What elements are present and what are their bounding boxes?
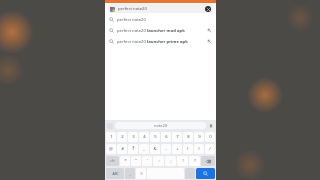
staticText: _ — [143, 146, 145, 152]
staticText: perfect note20 — [118, 6, 147, 12]
staticText: 3 — [132, 134, 135, 140]
button[interactable]: @ — [106, 144, 116, 154]
button[interactable]: , — [125, 168, 135, 179]
staticText: launcher prime apk — [147, 39, 188, 45]
staticText: : — [158, 158, 160, 164]
staticText: + — [176, 146, 179, 152]
button[interactable]: 5 — [150, 132, 160, 142]
button[interactable]: ⠿ — [136, 168, 146, 179]
staticText: & — [153, 146, 157, 152]
button[interactable]: 4 — [139, 132, 149, 142]
button[interactable]: Clear search — [205, 6, 211, 12]
button[interactable]: ; — [165, 156, 176, 166]
staticText: # — [121, 146, 124, 152]
button[interactable]: * — [120, 156, 130, 166]
staticText: - — [165, 146, 167, 152]
staticText: ; — [170, 158, 172, 164]
button[interactable]: Backspace — [201, 156, 215, 166]
staticText: 2 — [121, 134, 124, 140]
other: Insert suggestion — [207, 39, 212, 44]
button[interactable]: perfect note20 — [105, 36, 216, 47]
button[interactable]: perfect note20 — [105, 25, 216, 36]
button[interactable]: " — [131, 156, 141, 166]
button[interactable]: note20 — [115, 122, 206, 129]
staticText: ₹ — [132, 146, 135, 152]
staticText: 5 — [154, 134, 157, 140]
button[interactable]: =\< — [106, 156, 119, 166]
button[interactable]: - — [161, 144, 171, 154]
staticText: ⠿ — [140, 172, 143, 176]
button[interactable]: 1 — [106, 132, 116, 142]
staticText: ( — [187, 146, 189, 152]
button[interactable]: / — [205, 144, 215, 154]
staticText: =\< — [110, 159, 115, 163]
staticText: ' — [147, 158, 148, 164]
button[interactable]: 2 — [117, 132, 127, 142]
staticText: 0 — [209, 134, 212, 140]
button[interactable]: Voice input — [208, 123, 214, 129]
button[interactable]: ? — [189, 156, 200, 166]
staticText: 1 — [110, 134, 113, 140]
button[interactable]: 9 — [194, 132, 204, 142]
button[interactable]: + — [172, 144, 182, 154]
staticText: 4 — [143, 134, 146, 140]
button[interactable]: 0 — [205, 132, 215, 142]
staticText: , — [129, 171, 131, 177]
staticText: ? — [194, 158, 196, 164]
button[interactable]: _ — [139, 144, 149, 154]
staticText: perfect note20 — [117, 17, 146, 23]
button[interactable]: 3 — [128, 132, 138, 142]
staticText: perfect note20 — [117, 28, 147, 34]
button[interactable]: perfect note20 — [108, 4, 213, 13]
staticText: * — [124, 158, 127, 164]
button[interactable]: perfect note20 — [105, 14, 216, 25]
staticText: . — [189, 171, 191, 177]
button[interactable]: ABC — [106, 168, 124, 179]
staticText: ) — [198, 146, 200, 152]
button[interactable]: ' — [142, 156, 152, 166]
staticText: note20 — [154, 123, 168, 128]
staticText: ! — [182, 158, 184, 164]
staticText: @ — [109, 146, 113, 152]
staticText: " — [135, 158, 137, 164]
staticText: 7 — [176, 134, 179, 140]
button[interactable]: & — [150, 144, 160, 154]
staticText: launcher mod apk — [147, 28, 185, 34]
staticText: 9 — [198, 134, 201, 140]
button[interactable]: ₹ — [128, 144, 138, 154]
button[interactable]: ) — [194, 144, 204, 154]
button[interactable]: : — [153, 156, 164, 166]
button[interactable]: ( — [183, 144, 193, 154]
button[interactable]: 7 — [172, 132, 182, 142]
staticText: 8 — [187, 134, 190, 140]
button[interactable]: Search — [196, 168, 215, 179]
staticText: perfect note20 — [117, 39, 147, 45]
staticText: 6 — [165, 134, 168, 140]
staticText: / — [209, 146, 211, 152]
button[interactable]: 8 — [183, 132, 193, 142]
other: Insert suggestion — [207, 28, 212, 33]
button[interactable]: 6 — [161, 132, 171, 142]
button[interactable]: ! — [177, 156, 188, 166]
staticText: ABC — [112, 172, 119, 176]
button[interactable]: # — [117, 144, 127, 154]
